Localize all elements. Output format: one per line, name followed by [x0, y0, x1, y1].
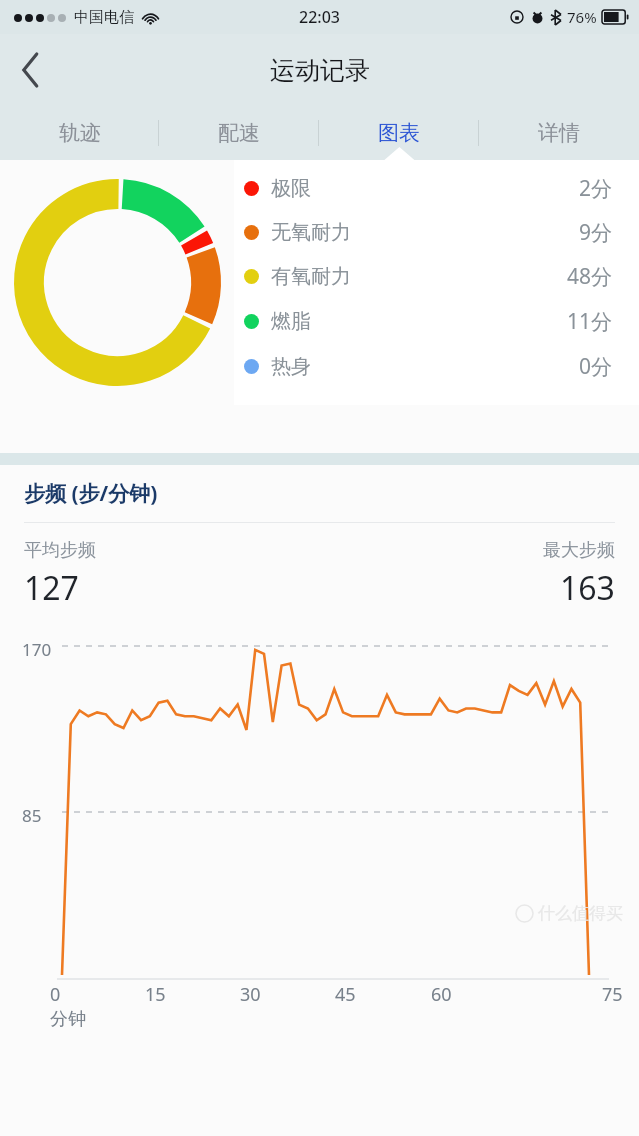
button[interactable]: 图表	[319, 106, 479, 160]
staticText: 图表	[378, 120, 420, 146]
staticText: 轨迹	[59, 120, 101, 146]
staticText: 步频 (步/分钟)	[24, 479, 158, 508]
staticText: 60	[431, 982, 452, 1007]
staticText: 163	[560, 566, 615, 610]
staticText: 22:03	[299, 6, 340, 28]
staticText: 48分	[567, 262, 613, 291]
button[interactable]: 热身	[244, 344, 613, 389]
staticText: 运动记录	[270, 55, 370, 86]
staticText: 热身	[271, 354, 311, 379]
staticText: 中国电信	[74, 8, 134, 27]
staticText: 燃脂	[271, 309, 311, 334]
staticText: 9分	[579, 218, 613, 247]
button[interactable]: Back	[0, 34, 62, 106]
staticText: 85	[22, 804, 42, 827]
staticText: 2分	[579, 174, 613, 203]
button[interactable]: 有氧耐力	[244, 254, 613, 299]
staticText: 0分	[579, 352, 613, 381]
staticText: 15	[145, 982, 166, 1007]
staticText: 配速	[218, 120, 260, 146]
staticText: 最大步频	[543, 539, 615, 562]
staticText: 11分	[567, 307, 613, 336]
staticText: 0	[50, 982, 61, 1007]
staticText: 平均步频	[24, 539, 96, 562]
staticText: 极限	[271, 176, 311, 201]
staticText: 30	[240, 982, 261, 1007]
button[interactable]: 配速	[159, 106, 319, 160]
staticText: 无氧耐力	[271, 220, 351, 245]
staticText: 76%	[567, 7, 597, 27]
staticText: 45	[335, 982, 356, 1007]
staticText: 170	[22, 638, 52, 661]
button[interactable]: 极限	[244, 166, 613, 210]
staticText: 127	[24, 566, 79, 610]
button[interactable]: 燃脂	[244, 299, 613, 344]
button[interactable]: 轨迹	[0, 106, 159, 160]
button[interactable]: 无氧耐力	[244, 210, 613, 254]
staticText: 详情	[538, 120, 580, 146]
staticText: 什么值得买	[538, 903, 623, 924]
staticText: 分钟	[50, 1008, 86, 1031]
staticText: 有氧耐力	[271, 264, 351, 289]
button[interactable]: 详情	[479, 106, 639, 160]
staticText: 75	[602, 982, 623, 1007]
